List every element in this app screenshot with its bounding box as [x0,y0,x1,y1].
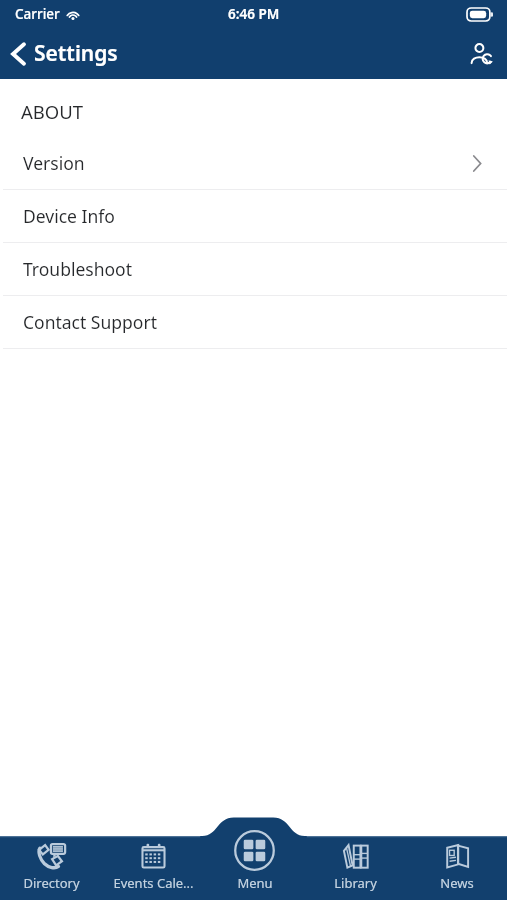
button[interactable]: Library [305,816,406,900]
staticText: Events Cale... [113,874,194,892]
staticText: Library [334,874,377,892]
staticText: Version [23,151,85,175]
button[interactable]: Directory [0,816,102,900]
button[interactable]: Menu [204,816,305,900]
button[interactable]: Device Info [0,190,507,242]
staticText: ABOUT [21,99,84,124]
staticText: Contact Support [23,310,157,334]
staticText: Menu [237,874,273,892]
button[interactable]: News [406,816,507,900]
button[interactable]: Contact Support [0,296,507,348]
button[interactable]: Settings [0,28,130,79]
staticText: 6:46 PM [228,5,280,23]
staticText: Troubleshoot [23,257,132,281]
button[interactable]: Events Cale... [102,816,204,900]
button[interactable]: Troubleshoot [0,243,507,295]
button[interactable]: Switch account [456,28,507,79]
staticText: News [440,874,474,892]
button[interactable]: Version [0,137,507,189]
staticText: Carrier [15,5,60,23]
staticText: Device Info [23,204,115,228]
staticText: Directory [23,874,80,892]
staticText: Settings [34,39,118,68]
